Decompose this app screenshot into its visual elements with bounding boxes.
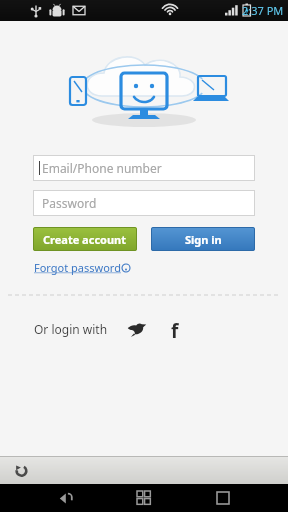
staticText: Sign in <box>185 232 222 247</box>
button[interactable]: Create account <box>33 227 137 251</box>
button[interactable]: Back <box>51 484 79 512</box>
button[interactable]: Forgot password <box>34 260 130 275</box>
staticText: 2:37 PM <box>242 3 284 18</box>
staticText: Forgot password <box>34 260 121 275</box>
staticText: Password <box>42 195 97 211</box>
button[interactable]: Login with Facebook <box>164 318 186 340</box>
button[interactable]: Home <box>130 484 158 512</box>
button[interactable]: Email/Phone number <box>33 155 255 181</box>
button[interactable]: Recents <box>209 484 237 512</box>
button[interactable]: Sign in <box>151 227 255 251</box>
staticText: f <box>171 318 179 340</box>
button[interactable]: Login with Twitter <box>126 318 148 340</box>
button[interactable]: Password <box>33 190 255 216</box>
staticText: Create account <box>43 232 127 247</box>
staticText: Email/Phone number <box>42 160 162 176</box>
staticText: Or login with <box>34 321 108 337</box>
button[interactable]: Back <box>8 457 34 483</box>
